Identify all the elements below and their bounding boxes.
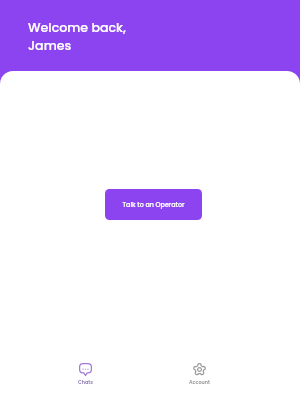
staticText: Chats [78, 379, 93, 386]
button[interactable]: Account [142, 363, 256, 400]
button[interactable]: Talk to an Operator [105, 189, 202, 220]
staticText: Account [189, 379, 210, 386]
staticText: Talk to an Operator [122, 200, 185, 209]
staticText: James [28, 37, 72, 55]
staticText: Welcome back, [28, 19, 126, 37]
button[interactable]: Chats [28, 363, 142, 400]
